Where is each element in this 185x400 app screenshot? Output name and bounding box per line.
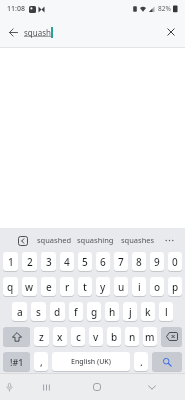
button[interactable]: 4 bbox=[60, 252, 74, 271]
staticText: English (UK) bbox=[71, 357, 111, 367]
button[interactable] bbox=[164, 25, 178, 39]
button[interactable]: 8 bbox=[132, 252, 146, 271]
button[interactable]: 9 bbox=[150, 252, 164, 271]
button[interactable]: English (UK) bbox=[52, 352, 130, 371]
staticText: r bbox=[65, 280, 70, 294]
button[interactable]: squashing bbox=[77, 235, 114, 245]
button[interactable]: f bbox=[69, 302, 83, 321]
staticText: d bbox=[54, 305, 61, 319]
staticText: j bbox=[129, 305, 132, 319]
button[interactable] bbox=[5, 24, 21, 40]
staticText: n bbox=[129, 330, 136, 344]
staticText: w bbox=[25, 280, 34, 294]
staticText: f bbox=[74, 305, 78, 319]
button[interactable] bbox=[3, 381, 15, 393]
button[interactable]: 1 bbox=[3, 252, 18, 271]
button[interactable]: m bbox=[143, 327, 157, 346]
staticText: o bbox=[154, 280, 161, 294]
staticText: q bbox=[7, 280, 14, 294]
button[interactable] bbox=[16, 234, 29, 247]
staticText: 1 bbox=[8, 255, 14, 269]
staticText: x bbox=[57, 330, 63, 344]
button[interactable]: i bbox=[132, 277, 146, 296]
button[interactable]: 3 bbox=[41, 252, 56, 271]
staticText: m bbox=[145, 330, 155, 344]
staticText: 2 bbox=[27, 255, 33, 269]
button[interactable]: w bbox=[22, 277, 37, 296]
button[interactable] bbox=[145, 380, 159, 394]
button[interactable]: 6 bbox=[96, 252, 110, 271]
staticText: 5 bbox=[82, 255, 88, 269]
staticText: e bbox=[46, 280, 52, 294]
staticText: l bbox=[165, 305, 168, 319]
staticText: 4 bbox=[64, 255, 70, 269]
staticText: b bbox=[111, 330, 118, 344]
staticText: p bbox=[172, 280, 179, 294]
button[interactable]: a bbox=[12, 302, 27, 321]
staticText: g bbox=[91, 305, 98, 319]
staticText: y bbox=[100, 280, 106, 294]
button[interactable]: 5 bbox=[78, 252, 92, 271]
staticText: , bbox=[40, 355, 43, 369]
button[interactable]: h bbox=[105, 302, 119, 321]
button[interactable]: e bbox=[41, 277, 56, 296]
button[interactable]: o bbox=[150, 277, 164, 296]
button[interactable]: c bbox=[71, 327, 85, 346]
button[interactable]: . bbox=[134, 352, 148, 371]
button[interactable]: squashes bbox=[121, 235, 155, 245]
button[interactable]: s bbox=[31, 302, 46, 321]
staticText: 6 bbox=[100, 255, 106, 269]
button[interactable]: 0 bbox=[168, 252, 182, 271]
button[interactable]: u bbox=[114, 277, 128, 296]
button[interactable]: , bbox=[34, 352, 48, 371]
staticText: . bbox=[140, 355, 143, 369]
staticText: 0 bbox=[172, 255, 178, 269]
button[interactable]: t bbox=[78, 277, 92, 296]
staticText: c bbox=[76, 330, 81, 344]
button[interactable]: p bbox=[168, 277, 182, 296]
staticText: 9 bbox=[154, 255, 160, 269]
button[interactable]: q bbox=[3, 277, 18, 296]
button[interactable]: k bbox=[141, 302, 155, 321]
button[interactable]: x bbox=[53, 327, 67, 346]
button[interactable]: v bbox=[89, 327, 103, 346]
staticText: z bbox=[39, 330, 44, 344]
staticText: v bbox=[93, 330, 99, 344]
staticText: t bbox=[83, 280, 87, 294]
button[interactable]: r bbox=[60, 277, 74, 296]
button[interactable] bbox=[161, 327, 182, 346]
staticText: !#1 bbox=[10, 356, 24, 368]
button[interactable]: d bbox=[50, 302, 65, 321]
staticText: 11:08 bbox=[7, 4, 25, 14]
staticText: squash bbox=[24, 27, 51, 38]
button[interactable] bbox=[163, 234, 175, 246]
staticText: i bbox=[138, 280, 141, 294]
staticText: h bbox=[109, 305, 116, 319]
button[interactable]: !#1 bbox=[3, 352, 30, 371]
button[interactable] bbox=[3, 327, 30, 346]
staticText: 82% bbox=[158, 4, 171, 13]
button[interactable]: 2 bbox=[22, 252, 37, 271]
button[interactable] bbox=[152, 352, 182, 371]
button[interactable] bbox=[90, 380, 104, 394]
staticText: 7 bbox=[118, 255, 124, 269]
button[interactable]: squashed bbox=[37, 235, 72, 245]
button[interactable]: y bbox=[96, 277, 110, 296]
button[interactable]: j bbox=[123, 302, 137, 321]
button[interactable] bbox=[39, 380, 53, 394]
staticText: s bbox=[36, 305, 41, 319]
button[interactable]: l bbox=[159, 302, 173, 321]
button[interactable]: b bbox=[107, 327, 121, 346]
button[interactable]: n bbox=[125, 327, 139, 346]
staticText: u bbox=[118, 280, 125, 294]
button[interactable]: 7 bbox=[114, 252, 128, 271]
button[interactable]: g bbox=[87, 302, 101, 321]
staticText: a bbox=[17, 305, 23, 319]
staticText: k bbox=[145, 305, 151, 319]
staticText: 8 bbox=[136, 255, 142, 269]
staticText: 3 bbox=[46, 255, 52, 269]
button[interactable]: z bbox=[34, 327, 49, 346]
